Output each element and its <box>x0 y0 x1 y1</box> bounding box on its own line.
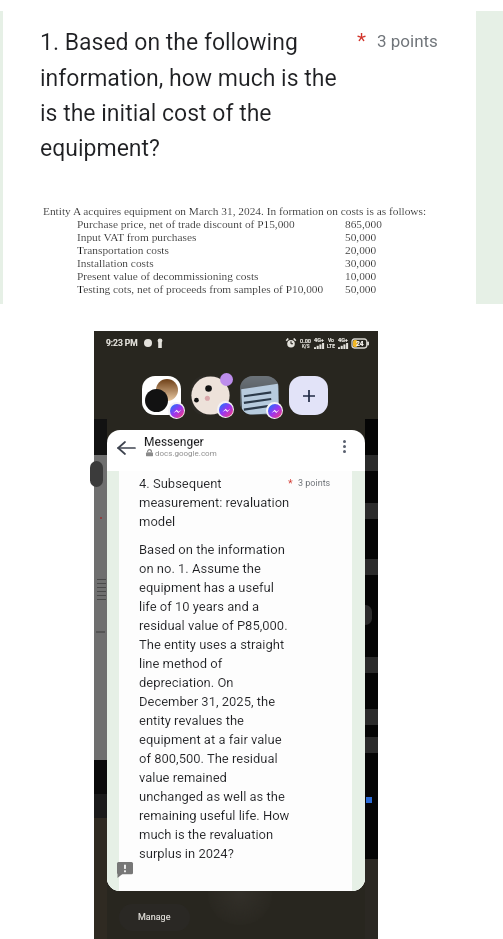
staticText: K/S <box>302 344 310 349</box>
staticText: 4G+ <box>338 337 348 343</box>
staticText: Transportation costs <box>77 244 169 257</box>
button[interactable]: Open chat <box>142 376 181 415</box>
staticText: Testing cots, net of proceeds from sampl… <box>77 283 324 296</box>
button[interactable]: Open chat <box>191 376 230 415</box>
button[interactable]: Back <box>114 436 137 459</box>
button[interactable]: Open chat <box>240 376 279 415</box>
staticText: 50,000 <box>345 283 377 296</box>
staticText: 24 <box>356 340 364 348</box>
button[interactable]: More options <box>334 436 355 457</box>
staticText: Input VAT from purchases <box>77 231 197 244</box>
staticText: 10,000 <box>345 270 377 283</box>
staticText: Vo <box>328 337 334 343</box>
staticText: Entity A acquires equipment on March 31,… <box>43 205 427 218</box>
staticText: 865,000 <box>345 218 382 231</box>
staticText: Purchase price, net of trade discount of… <box>77 218 295 231</box>
staticText: Based on the information on no. 1. Assum… <box>139 542 292 861</box>
staticText: 50,000 <box>345 231 377 244</box>
staticText: 4. Subsequent measurement: revaluation m… <box>139 476 290 529</box>
button[interactable]: New chat <box>289 376 328 415</box>
staticText: Installation costs <box>77 257 154 270</box>
staticText: 3 points <box>377 31 438 51</box>
staticText: Messenger <box>144 435 204 449</box>
staticText: 9:23 PM <box>106 338 138 348</box>
button[interactable]: Manage <box>119 904 190 931</box>
staticText: * <box>288 477 293 490</box>
staticText: Manage <box>138 912 171 923</box>
staticText: 3 points <box>298 478 331 489</box>
staticText: 20,000 <box>345 244 377 257</box>
staticText: Present value of decommissioning costs <box>77 270 259 283</box>
staticText: LTE <box>327 343 335 349</box>
staticText: docs.google.com <box>155 449 217 458</box>
staticText: * <box>357 29 367 54</box>
staticText: 4G+ <box>314 337 324 343</box>
staticText: 30,000 <box>345 257 377 270</box>
staticText: 0.00 <box>300 338 311 344</box>
staticText: 1. Based on the following information, h… <box>40 29 337 162</box>
